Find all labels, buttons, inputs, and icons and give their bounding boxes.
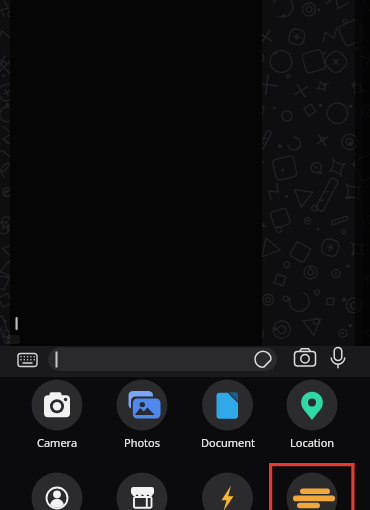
button[interactable]	[116, 473, 168, 510]
button[interactable]	[286, 380, 338, 432]
button[interactable]	[202, 380, 254, 432]
button[interactable]	[31, 380, 83, 432]
button[interactable]	[116, 380, 168, 432]
button[interactable]	[292, 346, 318, 371]
button[interactable]	[326, 345, 350, 372]
staticText: Photos	[124, 435, 161, 450]
button[interactable]	[286, 473, 338, 510]
button[interactable]	[31, 473, 83, 510]
staticText: Location	[290, 435, 335, 450]
staticText: Camera	[37, 435, 78, 450]
button[interactable]	[253, 349, 274, 370]
button[interactable]	[14, 350, 42, 370]
button[interactable]	[48, 347, 277, 371]
button[interactable]	[202, 473, 254, 510]
staticText: Document	[201, 435, 256, 450]
